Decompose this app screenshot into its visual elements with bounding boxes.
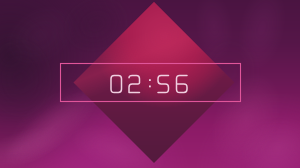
button[interactable]: Clock face bbox=[0, 0, 300, 168]
